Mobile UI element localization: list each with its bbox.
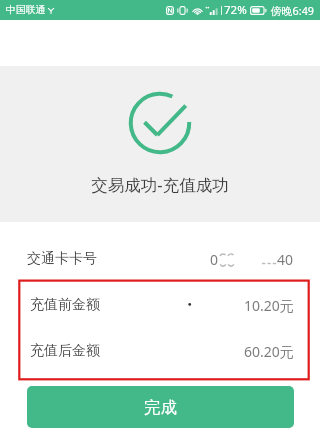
other: Vibrate bbox=[177, 6, 188, 15]
staticText: 完成 bbox=[144, 397, 177, 418]
staticText: 0 bbox=[210, 250, 219, 269]
other: Battery 72% bbox=[250, 6, 267, 15]
staticText: 72% bbox=[224, 2, 247, 18]
staticText: 60.20元 bbox=[244, 342, 294, 361]
other: Mobile signal bbox=[205, 6, 219, 15]
other: Wi-Fi bbox=[192, 6, 203, 15]
other: Success bbox=[128, 91, 192, 155]
button[interactable]: 完成 bbox=[27, 386, 294, 428]
button[interactable]: 充值前金额 bbox=[0, 282, 320, 328]
staticText: 中国联通 bbox=[6, 4, 46, 16]
staticText: 交通卡卡号 bbox=[27, 250, 97, 268]
staticText: 充值后金额 bbox=[30, 342, 100, 360]
staticText: 交易成功-充值成功 bbox=[0, 173, 320, 196]
staticText: 傍晚6:49 bbox=[271, 3, 315, 18]
other: NFC bbox=[166, 6, 174, 15]
button[interactable]: 交通卡卡号 bbox=[0, 234, 320, 284]
button[interactable]: 充值后金额 bbox=[0, 328, 320, 374]
staticText: 10.20元 bbox=[244, 296, 294, 315]
staticText: 充值前金额 bbox=[30, 296, 100, 314]
staticText: 40 bbox=[277, 250, 294, 269]
